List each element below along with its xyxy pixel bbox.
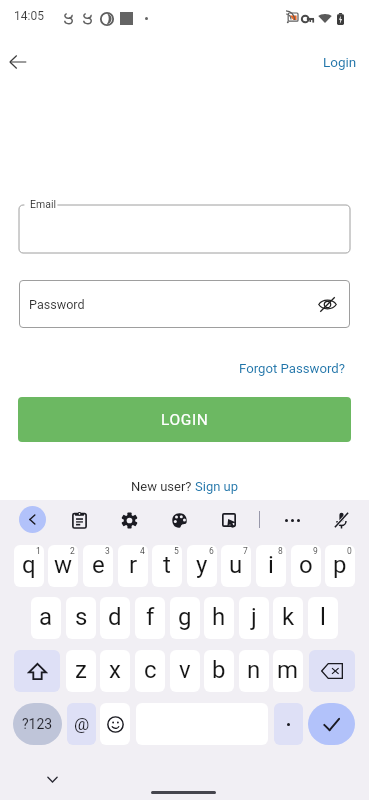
staticText: m bbox=[277, 656, 299, 684]
button[interactable]: e bbox=[83, 545, 113, 587]
button[interactable]: Shift bbox=[14, 650, 60, 692]
staticText: r bbox=[129, 551, 138, 579]
staticText: @ bbox=[74, 714, 90, 734]
staticText: o bbox=[299, 551, 313, 579]
staticText: k bbox=[282, 603, 295, 631]
button[interactable]: a bbox=[31, 597, 61, 639]
staticText: z bbox=[75, 656, 87, 684]
button[interactable]: k bbox=[273, 597, 303, 639]
button[interactable]: Show password bbox=[313, 290, 341, 318]
button[interactable]: u bbox=[221, 545, 251, 587]
staticText: Email bbox=[30, 198, 56, 210]
button[interactable]: i bbox=[256, 545, 286, 587]
staticText: c bbox=[144, 656, 157, 684]
staticText: a bbox=[39, 603, 53, 631]
staticText: h bbox=[212, 603, 226, 631]
button[interactable]: f bbox=[135, 597, 165, 639]
button[interactable] bbox=[274, 703, 303, 745]
button[interactable]: y bbox=[187, 545, 217, 587]
button[interactable]: c bbox=[135, 650, 165, 692]
staticText: New user? bbox=[131, 479, 195, 494]
staticText: 7 bbox=[243, 546, 248, 556]
button[interactable]: Sign up bbox=[195, 479, 239, 494]
staticText: i bbox=[268, 551, 274, 579]
button[interactable]: Login bbox=[319, 50, 361, 74]
button[interactable]: ?123 bbox=[13, 703, 62, 745]
staticText: t bbox=[163, 551, 171, 579]
staticText: 0 bbox=[347, 546, 352, 556]
staticText: 6 bbox=[209, 546, 214, 556]
staticText: g bbox=[178, 603, 192, 631]
button[interactable]: Back bbox=[0, 44, 36, 80]
button[interactable]: Emoji bbox=[100, 703, 130, 745]
staticText: y bbox=[196, 551, 208, 579]
staticText: 8 bbox=[278, 546, 283, 556]
staticText: 4 bbox=[140, 546, 145, 556]
button[interactable]: More options bbox=[278, 506, 306, 534]
staticText: n bbox=[247, 656, 261, 684]
staticText: 3 bbox=[105, 546, 110, 556]
staticText: s bbox=[75, 603, 88, 631]
staticText: u bbox=[229, 551, 243, 579]
button[interactable]: Forgot Password? bbox=[239, 361, 346, 376]
button[interactable]: Mute microphone bbox=[327, 506, 355, 534]
staticText: 9 bbox=[313, 546, 318, 556]
staticText: l bbox=[320, 603, 326, 631]
button[interactable]: Clipboard bbox=[65, 506, 93, 534]
button[interactable]: d bbox=[100, 597, 130, 639]
staticText: Login bbox=[323, 54, 357, 70]
button[interactable]: Backspace bbox=[309, 650, 355, 692]
staticText: 1 bbox=[36, 546, 41, 556]
staticText: j bbox=[251, 603, 257, 631]
staticText: d bbox=[108, 603, 122, 631]
staticText: 14:05 bbox=[14, 9, 44, 23]
button[interactable]: Settings bbox=[115, 506, 143, 534]
button[interactable]: Previous bbox=[19, 506, 46, 533]
staticText: ?123 bbox=[22, 716, 53, 732]
button[interactable]: Password bbox=[19, 280, 350, 328]
button[interactable]: n bbox=[239, 650, 269, 692]
button[interactable]: v bbox=[170, 650, 200, 692]
staticText: x bbox=[109, 656, 121, 684]
button[interactable]: Theme bbox=[165, 506, 193, 534]
button[interactable]: j bbox=[239, 597, 269, 639]
staticText: Forgot Password? bbox=[239, 361, 346, 376]
staticText: b bbox=[212, 656, 226, 684]
button[interactable]: b bbox=[204, 650, 234, 692]
button[interactable]: t bbox=[152, 545, 182, 587]
button[interactable]: Enter bbox=[308, 703, 355, 745]
staticText: w bbox=[54, 551, 73, 579]
button[interactable]: q bbox=[14, 545, 44, 587]
button[interactable]: Resize keyboard bbox=[215, 506, 243, 534]
staticText: p bbox=[333, 551, 347, 579]
button[interactable]: h bbox=[204, 597, 234, 639]
button[interactable]: @ bbox=[67, 703, 96, 745]
staticText: Password bbox=[29, 297, 85, 312]
button[interactable]: LOGIN bbox=[18, 397, 351, 442]
button[interactable]: s bbox=[66, 597, 96, 639]
button[interactable]: o bbox=[291, 545, 321, 587]
staticText: q bbox=[22, 551, 36, 579]
button[interactable]: z bbox=[66, 650, 96, 692]
button[interactable]: m bbox=[273, 650, 303, 692]
button[interactable]: w bbox=[48, 545, 78, 587]
button[interactable]: r bbox=[118, 545, 148, 587]
staticText: 2 bbox=[70, 546, 75, 556]
staticText: 5 bbox=[174, 546, 179, 556]
button[interactable]: Hide keyboard bbox=[38, 765, 66, 793]
button[interactable]: l bbox=[308, 597, 338, 639]
button[interactable]: g bbox=[170, 597, 200, 639]
button[interactable]: x bbox=[100, 650, 130, 692]
staticText: f bbox=[146, 603, 155, 631]
staticText: Sign up bbox=[195, 479, 239, 494]
staticText: e bbox=[92, 551, 105, 579]
staticText: v bbox=[179, 656, 191, 684]
button[interactable]: p bbox=[325, 545, 355, 587]
staticText: LOGIN bbox=[161, 411, 209, 429]
